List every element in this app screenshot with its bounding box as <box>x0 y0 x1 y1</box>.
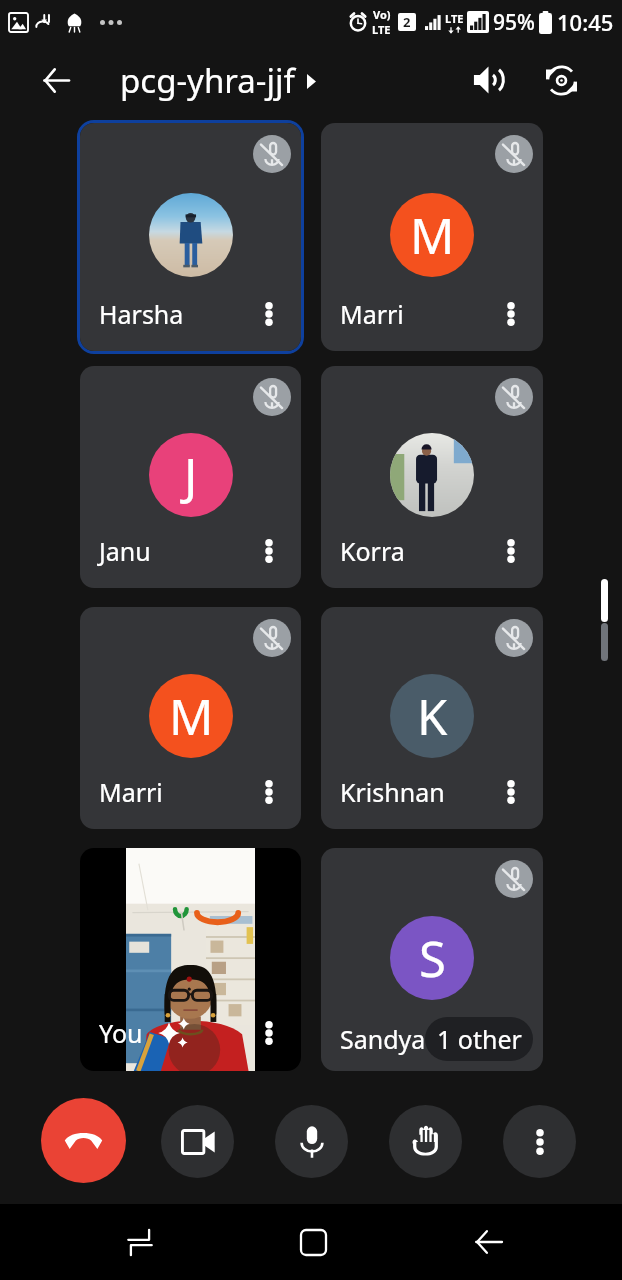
staticText: You <box>99 1016 143 1050</box>
button[interactable]: Recent apps <box>116 1218 164 1266</box>
button[interactable]: More options <box>492 532 530 570</box>
button[interactable]: More options <box>250 532 288 570</box>
staticText: 95% <box>493 8 535 37</box>
staticText: J <box>184 442 198 509</box>
button[interactable]: More options <box>492 773 530 811</box>
staticText: M <box>410 202 455 269</box>
button[interactable]: You <box>80 848 301 1071</box>
button[interactable]: 1 other <box>425 1017 533 1061</box>
staticText: K <box>417 683 448 750</box>
staticText: Vo) <box>373 7 391 22</box>
other: Muted <box>495 135 533 173</box>
button[interactable]: K <box>321 607 543 829</box>
other: Muted <box>495 860 533 898</box>
staticText: LTE <box>445 11 464 26</box>
button[interactable]: End call <box>41 1098 126 1183</box>
staticText: 2 <box>403 13 411 31</box>
button[interactable]: More options <box>503 1105 576 1178</box>
button[interactable]: Muted <box>80 123 301 351</box>
other: Muted <box>253 135 291 173</box>
button[interactable]: S <box>321 848 543 1071</box>
button[interactable]: Microphone <box>275 1105 348 1178</box>
staticText: 1 other <box>437 1022 522 1056</box>
staticText: Korra <box>340 534 405 568</box>
staticText: Marri <box>340 297 404 331</box>
button[interactable]: pcg-yhra-jjf <box>120 58 316 103</box>
button[interactable]: More options <box>250 1014 288 1052</box>
button[interactable]: Switch camera <box>535 54 587 106</box>
button[interactable]: Back <box>464 1218 512 1266</box>
staticText: Sandya <box>340 1022 426 1056</box>
button[interactable]: Camera <box>161 1105 234 1178</box>
other: Muted <box>495 378 533 416</box>
staticText: pcg-yhra-jjf <box>120 58 295 103</box>
button[interactable]: More options <box>250 295 288 333</box>
staticText: Janu <box>99 534 151 568</box>
button[interactable]: More options <box>250 773 288 811</box>
staticText: M <box>169 683 214 750</box>
staticText: S <box>419 925 446 992</box>
other: Muted <box>253 378 291 416</box>
button[interactable]: Raise hand <box>389 1105 462 1178</box>
button[interactable]: M <box>321 123 543 351</box>
button[interactable]: J <box>80 366 301 588</box>
button[interactable]: Speaker <box>462 54 514 106</box>
staticText: Marri <box>99 775 163 809</box>
other: Muted <box>253 619 291 657</box>
staticText: Krishnan <box>340 775 445 809</box>
button[interactable]: M <box>80 607 301 829</box>
staticText: Harsha <box>99 297 184 331</box>
button[interactable]: Back <box>33 57 79 103</box>
other: Muted <box>495 619 533 657</box>
button[interactable]: Home <box>289 1218 337 1266</box>
button[interactable]: Muted <box>321 366 543 588</box>
button[interactable]: More options <box>492 295 530 333</box>
staticText: 10:45 <box>557 7 614 37</box>
staticText: LTE <box>372 22 391 37</box>
